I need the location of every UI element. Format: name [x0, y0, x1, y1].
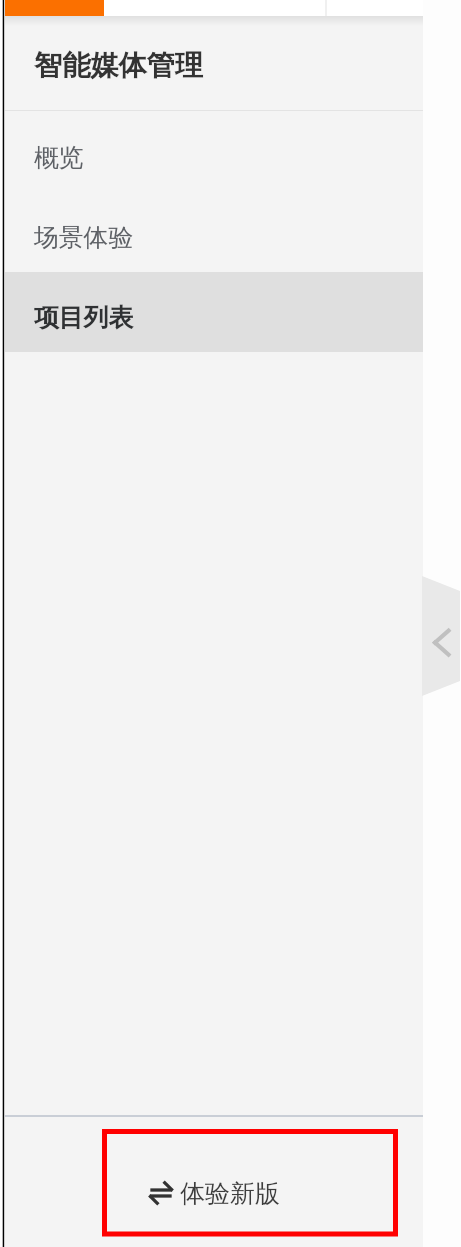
staticText: 体验新版 [180, 1178, 280, 1209]
button[interactable]: 项目列表 [0, 272, 423, 352]
button[interactable]: 场景体验 [0, 192, 423, 272]
button[interactable]: 体验新版 [105, 1132, 395, 1233]
button[interactable]: Collapse sidebar [422, 576, 460, 696]
button[interactable]: 概览 [0, 112, 423, 192]
staticText: 概览 [34, 142, 84, 173]
staticText: 智能媒体管理 [34, 48, 204, 84]
staticText: 场景体验 [34, 222, 134, 253]
staticText: 项目列表 [34, 302, 134, 333]
